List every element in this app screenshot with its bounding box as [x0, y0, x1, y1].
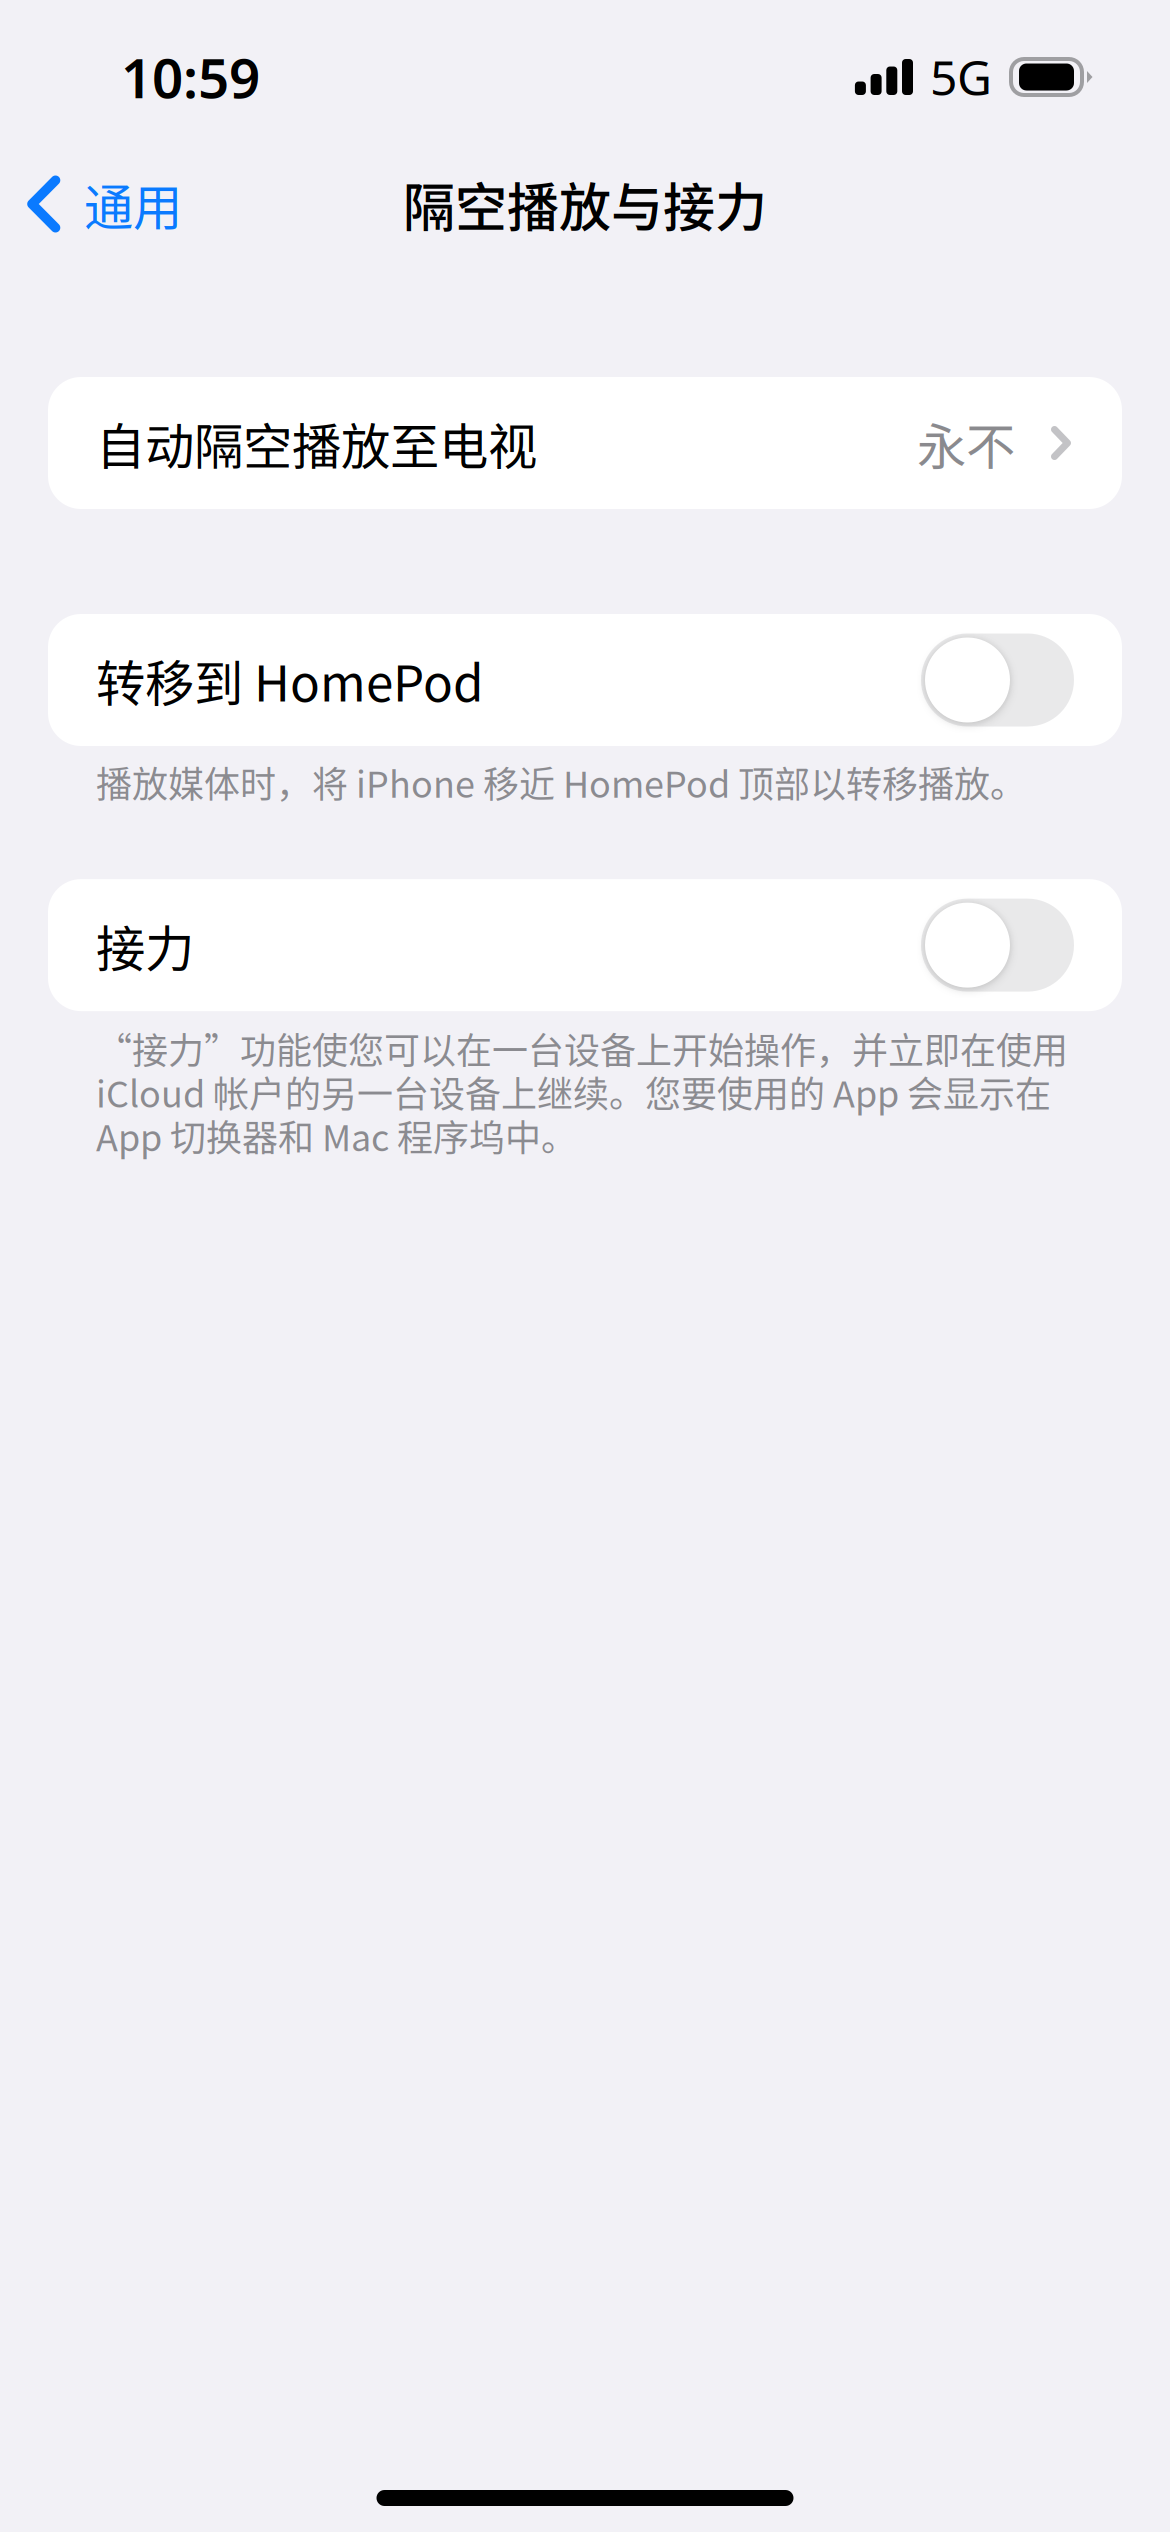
button[interactable]: 接力 [0, 879, 1170, 1011]
staticText: “接力”功能使您可以在一台设备上开始操作，并立即在使用 iCloud 帐户的另一… [96, 1022, 1068, 1161]
button[interactable]: 转移到 HomePod [0, 614, 1170, 746]
staticText: 转移到 HomePod [96, 644, 484, 716]
staticText: 永不 [917, 407, 1015, 479]
button[interactable]: 自动隔空播放至电视 [0, 377, 1170, 509]
staticText: 播放媒体时，将 iPhone 移近 HomePod 顶部以转移播放。 [96, 756, 1026, 808]
button[interactable]: 通用 [0, 138, 204, 270]
staticText: 自动隔空播放至电视 [96, 407, 537, 479]
staticText: 接力 [96, 909, 194, 981]
staticText: 10:59 [121, 41, 260, 113]
staticText: 5G [930, 45, 992, 109]
staticText: 通用 [84, 168, 182, 240]
staticText: 隔空播放与接力 [403, 166, 767, 242]
